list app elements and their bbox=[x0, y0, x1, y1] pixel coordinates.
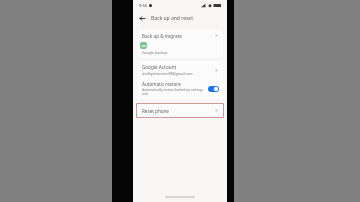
button[interactable]: Google Account bbox=[137, 61, 223, 79]
staticText: Automatic restore bbox=[142, 81, 181, 87]
button[interactable]: Reset phone bbox=[136, 103, 224, 118]
staticText: Reset phone bbox=[142, 108, 215, 114]
staticText: Google backup bbox=[142, 50, 168, 55]
staticText: 9:56 bbox=[139, 3, 147, 8]
button[interactable]: Automatic restore toggle bbox=[208, 86, 219, 92]
staticText: shoftgraharoami98@gmail.com bbox=[142, 71, 193, 76]
button[interactable]: Back up & migrate bbox=[137, 29, 223, 42]
button[interactable]: Automatic restore bbox=[137, 79, 223, 99]
staticText: Google Account bbox=[142, 64, 177, 70]
staticText: Automatically restore backed up settings… bbox=[142, 88, 206, 96]
staticText: Back up and reset bbox=[151, 15, 193, 22]
button[interactable]: Back bbox=[138, 14, 147, 23]
staticText: Back up & migrate bbox=[142, 33, 215, 39]
